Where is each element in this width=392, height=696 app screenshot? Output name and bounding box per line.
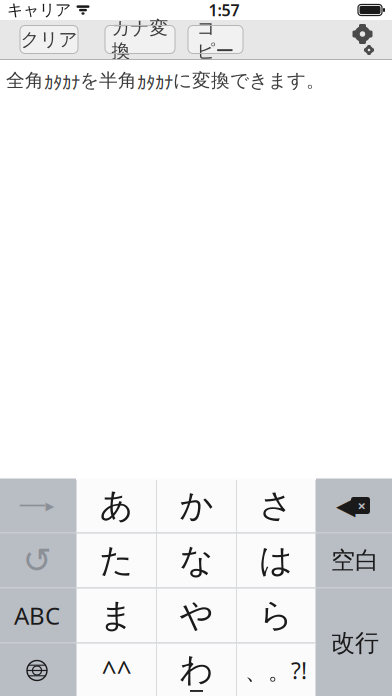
button[interactable]: Delete bbox=[316, 478, 392, 532]
staticText: コピー bbox=[196, 17, 234, 62]
button[interactable]: さ bbox=[237, 478, 315, 532]
button[interactable]: あ bbox=[77, 478, 156, 532]
button[interactable]: カナ変換 bbox=[105, 25, 175, 53]
button[interactable]: 改行 bbox=[316, 588, 392, 696]
staticText: ◀ bbox=[336, 491, 355, 520]
staticText: 空白 bbox=[331, 546, 379, 575]
staticText: 、。?! bbox=[245, 655, 307, 686]
button[interactable]: ^^ bbox=[77, 643, 156, 696]
staticText: カナ変換 bbox=[111, 17, 168, 62]
button[interactable]: か bbox=[157, 478, 236, 532]
button[interactable]: クリア bbox=[20, 25, 78, 53]
staticText: わ bbox=[179, 649, 213, 690]
staticText: な bbox=[179, 540, 213, 581]
staticText: た bbox=[99, 540, 133, 581]
button[interactable]: ま bbox=[77, 588, 156, 642]
button[interactable]: Settings bbox=[348, 24, 378, 54]
button[interactable]: た bbox=[77, 533, 156, 587]
staticText: か bbox=[179, 485, 213, 526]
button[interactable]: 空白 bbox=[316, 533, 392, 587]
staticText: ↺ bbox=[22, 541, 51, 580]
staticText: キャリア bbox=[7, 0, 71, 20]
staticText: ら bbox=[259, 595, 293, 636]
staticText: ▸ bbox=[45, 496, 54, 515]
staticText: 1:57 bbox=[208, 0, 239, 21]
staticText: × bbox=[357, 496, 365, 515]
staticText: 改行 bbox=[331, 628, 379, 658]
button[interactable]: や bbox=[157, 588, 236, 642]
staticText: あ bbox=[99, 485, 133, 526]
staticText: は bbox=[259, 540, 293, 581]
staticText: クリア bbox=[20, 28, 77, 51]
button[interactable]: Next character bbox=[0, 478, 76, 532]
staticText: ABC bbox=[14, 600, 60, 631]
button[interactable]: Undo bbox=[0, 533, 76, 587]
button[interactable]: は bbox=[237, 533, 315, 587]
button[interactable]: な bbox=[157, 533, 236, 587]
button[interactable]: ら bbox=[237, 588, 315, 642]
button[interactable]: Switch keyboard bbox=[0, 643, 76, 696]
staticText: さ bbox=[259, 485, 293, 526]
button[interactable]: 、。?! bbox=[237, 643, 315, 696]
button[interactable]: ABC bbox=[0, 588, 76, 642]
staticText: ^^ bbox=[101, 653, 131, 688]
staticText: ま bbox=[99, 595, 133, 636]
button[interactable]: わ bbox=[157, 643, 236, 696]
staticText: や bbox=[179, 595, 213, 636]
staticText: 全角ｶﾀｶﾅを半角ｶﾀｶﾅに変換できます。 bbox=[6, 69, 325, 92]
button[interactable]: コピー bbox=[188, 25, 243, 53]
